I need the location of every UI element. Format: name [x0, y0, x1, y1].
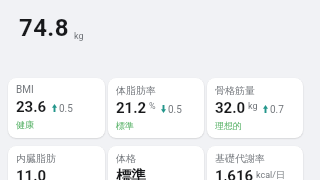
- staticText: 体脂肪率: [116, 84, 156, 97]
- button[interactable]: 体脂肪率: [108, 78, 204, 138]
- button[interactable]: 基礎代謝率: [207, 146, 303, 180]
- staticText: kg: [248, 101, 258, 112]
- staticText: 0.5: [168, 104, 182, 116]
- staticText: 骨格筋量: [215, 84, 255, 97]
- staticText: 0.5: [59, 103, 73, 115]
- button[interactable]: 内臓脂肪: [8, 146, 105, 180]
- staticText: kcal/日: [256, 169, 285, 180]
- staticText: 体格: [116, 152, 136, 165]
- staticText: 健康: [16, 119, 34, 130]
- staticText: %: [149, 101, 156, 112]
- staticText: BMI: [16, 84, 34, 96]
- staticText: 基礎代謝率: [215, 152, 265, 165]
- staticText: 理想的: [215, 120, 242, 131]
- button[interactable]: BMI: [8, 78, 105, 138]
- button[interactable]: 体格: [108, 146, 204, 180]
- staticText: 標準: [116, 167, 146, 180]
- staticText: 21.2: [116, 99, 147, 117]
- staticText: 23.6: [16, 98, 47, 116]
- button[interactable]: 骨格筋量: [207, 78, 303, 138]
- staticText: 74.8: [19, 14, 69, 42]
- staticText: 内臓脂肪: [16, 152, 56, 165]
- staticText: 32.0: [215, 99, 246, 117]
- staticText: 標準: [116, 120, 134, 131]
- staticText: 1,616: [215, 167, 254, 180]
- staticText: kg: [74, 31, 84, 42]
- staticText: 11.0: [16, 167, 47, 180]
- staticText: 0.7: [270, 104, 284, 116]
